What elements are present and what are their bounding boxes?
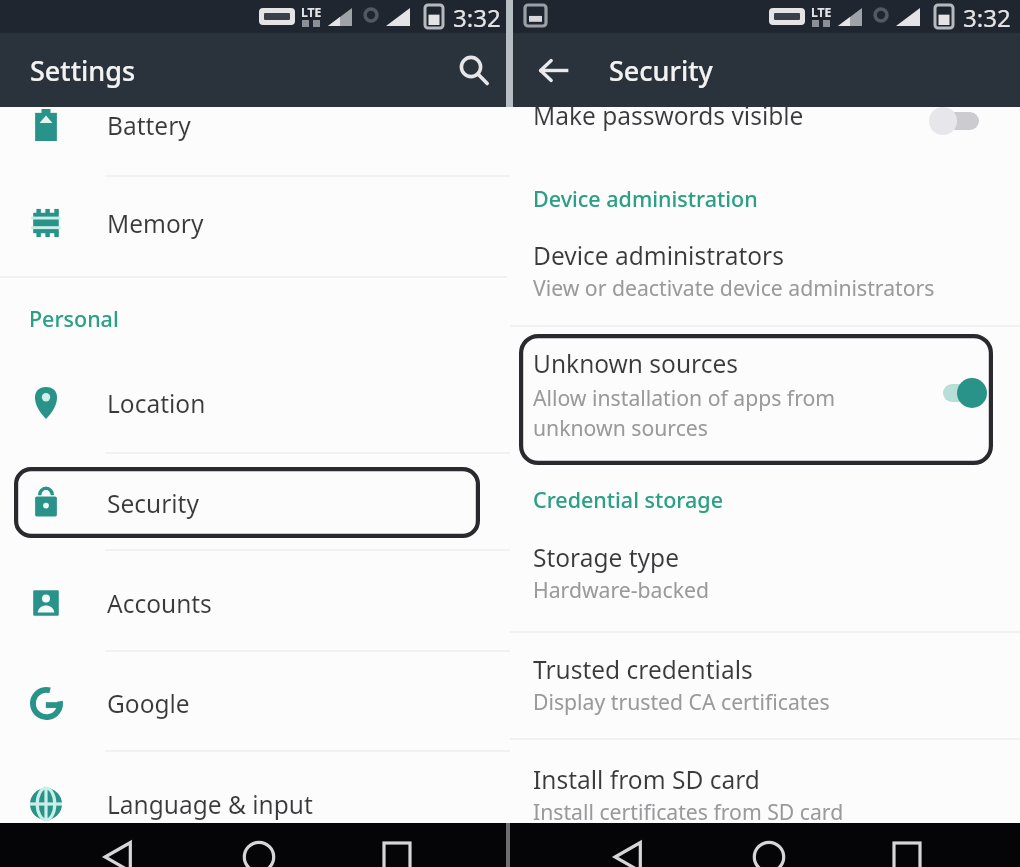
button[interactable]: Back [604,842,651,867]
staticText: Allow installation of apps from unknown … [533,383,836,443]
button[interactable]: Back [530,46,578,94]
staticText: 3:32 [963,1,1011,34]
button[interactable]: Recents [883,843,930,867]
staticText: View or deactivate device administrators [533,273,935,302]
button[interactable]: Search [451,47,497,93]
staticText: Google [107,687,190,720]
staticText: Memory [107,207,204,240]
staticText: Settings [30,52,136,89]
button[interactable]: Security [0,481,507,525]
button[interactable]: Trusted credentials [510,653,1020,731]
staticText: Hardware-backed [533,575,709,604]
button[interactable]: Storage type [510,541,1020,619]
button[interactable]: Location [0,381,507,425]
staticText: Install from SD card [533,763,760,796]
staticText: Personal [29,304,119,333]
staticText: Make passwords visible [533,99,804,132]
staticText: Security [107,487,199,520]
button[interactable]: Device administrators [510,239,1020,317]
button[interactable]: Recents [373,843,420,867]
staticText: LTE [811,4,832,20]
button[interactable]: Battery [0,103,507,147]
staticText: Device administrators [533,239,784,272]
button[interactable]: Home [745,842,792,867]
staticText: Security [609,52,713,89]
staticText: 3:32 [453,1,501,34]
button[interactable]: Install from SD card [510,763,1020,841]
staticText: Display trusted CA certificates [533,687,830,716]
button[interactable]: Home [235,842,282,867]
button[interactable]: Make passwords visible [533,99,1020,149]
button[interactable]: Memory [0,201,507,245]
staticText: Trusted credentials [533,653,753,686]
staticText: LTE [301,4,322,20]
other: Unknown sources highlighted [519,334,993,465]
button[interactable]: Accounts [0,581,507,625]
staticText: Storage type [533,541,679,574]
button[interactable]: Unknown sources [533,347,953,452]
staticText: Unknown sources [533,347,739,380]
staticText: Install certificates from SD card [533,797,844,826]
button[interactable]: Back [94,842,141,867]
staticText: Accounts [107,587,212,620]
staticText: Battery [107,109,191,142]
button[interactable]: Language & input [0,782,507,826]
staticText: Device administration [533,184,758,213]
other: Security highlighted [14,467,480,538]
button[interactable]: Google [0,681,507,725]
staticText: Location [107,387,206,420]
staticText: Language & input [107,788,313,821]
staticText: Credential storage [533,485,723,514]
